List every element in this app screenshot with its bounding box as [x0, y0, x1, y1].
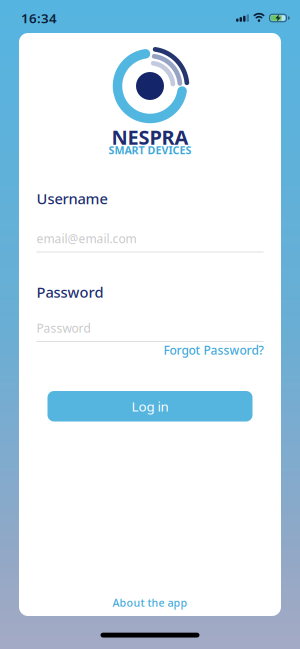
- staticText: SMART DEVICES: [108, 143, 191, 157]
- button[interactable]: About the app: [112, 596, 187, 609]
- staticText: Password: [36, 320, 90, 336]
- button[interactable]: Log in: [47, 391, 252, 421]
- staticText: Username: [36, 189, 107, 208]
- staticText: About the app: [112, 595, 187, 610]
- staticText: NESPRA: [111, 124, 188, 150]
- staticText: 16:34: [21, 9, 57, 27]
- staticText: Forgot Password?: [163, 342, 263, 358]
- staticText: Password: [36, 282, 103, 302]
- staticText: Log in: [131, 397, 168, 415]
- staticText: email@email.com: [36, 230, 136, 246]
- button[interactable]: Forgot Password?: [163, 342, 263, 358]
